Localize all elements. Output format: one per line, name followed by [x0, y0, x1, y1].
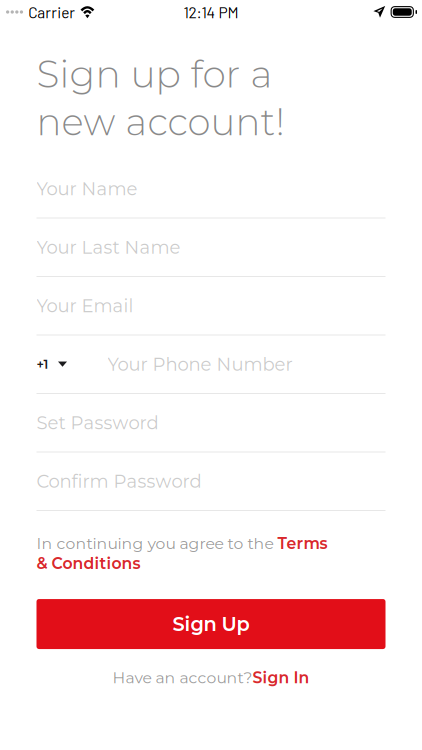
button[interactable]: & Conditions [36, 554, 140, 573]
staticText: new account! [36, 99, 284, 145]
staticText: In continuing you agree to the [36, 534, 277, 553]
staticText: Set Password [36, 412, 158, 434]
staticText: Your Name [36, 178, 137, 200]
button[interactable]: Set Password [36, 394, 385, 452]
staticText: Your Phone Number [107, 353, 292, 375]
button[interactable]: Your Name [36, 160, 385, 218]
button[interactable]: Your Email [36, 277, 385, 335]
staticText: Sign up for a [36, 51, 272, 97]
staticText: Sign Up [172, 612, 249, 636]
staticText: Your Email [36, 295, 133, 317]
button[interactable]: Terms [277, 534, 327, 553]
staticText: Your Last Name [36, 236, 180, 258]
staticText: +1 [36, 356, 48, 372]
button[interactable]: Sign Up [36, 599, 385, 649]
staticText: Confirm Password [36, 470, 201, 492]
staticText: Have an account? [112, 668, 252, 687]
staticText: 12:14 PM [183, 3, 238, 21]
button[interactable]: +1 [36, 335, 385, 394]
button[interactable]: Confirm Password [36, 452, 385, 511]
staticText: Carrier [28, 3, 75, 21]
staticText: & Conditions [36, 554, 140, 573]
staticText: Sign In [252, 668, 309, 687]
button[interactable]: Your Last Name [36, 218, 385, 277]
staticText: Terms [277, 534, 327, 553]
button[interactable]: Sign In [252, 668, 309, 687]
